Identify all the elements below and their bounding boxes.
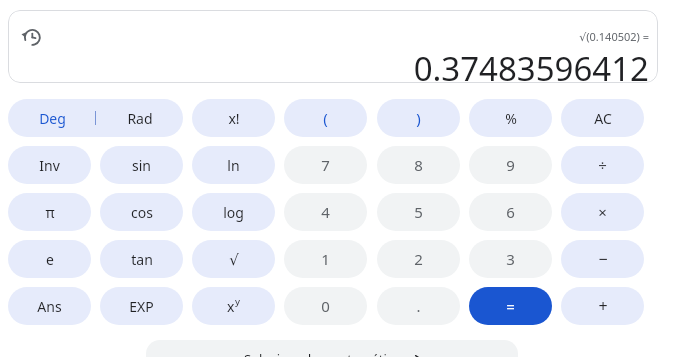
staticText: x bbox=[227, 297, 235, 316]
staticText: 0 bbox=[321, 296, 330, 316]
button[interactable]: 1 bbox=[284, 240, 367, 278]
staticText: x! bbox=[228, 109, 240, 128]
staticText: 7 bbox=[321, 155, 330, 175]
button[interactable]: Rad bbox=[96, 99, 183, 137]
button[interactable]: 9 bbox=[469, 146, 552, 184]
button[interactable]: Ans bbox=[8, 287, 91, 325]
button[interactable]: tan bbox=[100, 240, 183, 278]
staticText: Solucionador matemático bbox=[244, 350, 401, 357]
button[interactable]: x! bbox=[192, 99, 275, 137]
button[interactable]: ln bbox=[192, 146, 275, 184]
button[interactable]: 6 bbox=[469, 193, 552, 231]
staticText: 4 bbox=[321, 202, 330, 222]
staticText: × bbox=[598, 202, 607, 222]
staticText: 9 bbox=[506, 155, 515, 175]
button[interactable]: % bbox=[469, 99, 552, 137]
button[interactable]: 2 bbox=[377, 240, 460, 278]
button[interactable]: 8 bbox=[377, 146, 460, 184]
staticText: sin bbox=[132, 156, 151, 175]
staticText: . bbox=[416, 296, 421, 316]
button[interactable]: e bbox=[8, 240, 91, 278]
button[interactable]: ( bbox=[284, 99, 367, 137]
button[interactable]: . bbox=[377, 287, 460, 325]
staticText: ln bbox=[227, 156, 240, 175]
staticText: 1 bbox=[321, 249, 330, 269]
button[interactable]: ÷ bbox=[561, 146, 644, 184]
staticText: Inv bbox=[39, 156, 60, 175]
staticText: 6 bbox=[506, 202, 515, 222]
button[interactable]: Solucionador matemático bbox=[146, 340, 518, 357]
button[interactable]: = bbox=[469, 287, 552, 325]
staticText: ( bbox=[323, 108, 328, 128]
staticText: Deg bbox=[39, 109, 66, 128]
button[interactable]: 7 bbox=[284, 146, 367, 184]
staticText: EXP bbox=[129, 297, 154, 316]
button[interactable]: x bbox=[192, 287, 275, 325]
button[interactable]: History bbox=[18, 24, 44, 50]
staticText: = bbox=[506, 296, 515, 316]
staticText: 0.37483596412 bbox=[413, 46, 649, 83]
button[interactable]: π bbox=[8, 193, 91, 231]
staticText: 8 bbox=[414, 155, 423, 175]
staticText: Rad bbox=[127, 109, 153, 128]
staticText: tan bbox=[131, 250, 153, 269]
staticText: AC bbox=[594, 109, 612, 128]
staticText: π bbox=[45, 203, 55, 222]
staticText: % bbox=[505, 109, 517, 128]
button[interactable]: AC bbox=[561, 99, 644, 137]
staticText: − bbox=[598, 248, 608, 270]
button[interactable]: Inv bbox=[8, 146, 91, 184]
staticText: √(0.140502) = bbox=[579, 29, 649, 44]
staticText: 5 bbox=[414, 202, 423, 222]
staticText: ÷ bbox=[598, 155, 607, 175]
staticText: Ans bbox=[37, 297, 62, 316]
staticText: + bbox=[598, 295, 608, 317]
staticText: log bbox=[223, 203, 244, 222]
button[interactable]: 3 bbox=[469, 240, 552, 278]
button[interactable]: × bbox=[561, 193, 644, 231]
staticText: y bbox=[235, 295, 240, 308]
staticText: √ bbox=[229, 251, 239, 268]
button[interactable]: + bbox=[561, 287, 644, 325]
staticText: e bbox=[46, 250, 54, 269]
staticText: ) bbox=[416, 108, 421, 128]
button[interactable]: − bbox=[561, 240, 644, 278]
button[interactable]: √ bbox=[192, 240, 275, 278]
button[interactable]: cos bbox=[100, 193, 183, 231]
button[interactable]: 0 bbox=[284, 287, 367, 325]
button[interactable]: ) bbox=[377, 99, 460, 137]
staticText: 3 bbox=[506, 249, 515, 269]
staticText: cos bbox=[131, 203, 153, 222]
button[interactable]: log bbox=[192, 193, 275, 231]
button[interactable]: 5 bbox=[377, 193, 460, 231]
button[interactable]: EXP bbox=[100, 287, 183, 325]
staticText: 2 bbox=[414, 249, 423, 269]
button[interactable]: 4 bbox=[284, 193, 367, 231]
button[interactable]: Deg bbox=[8, 99, 96, 137]
button[interactable]: sin bbox=[100, 146, 183, 184]
